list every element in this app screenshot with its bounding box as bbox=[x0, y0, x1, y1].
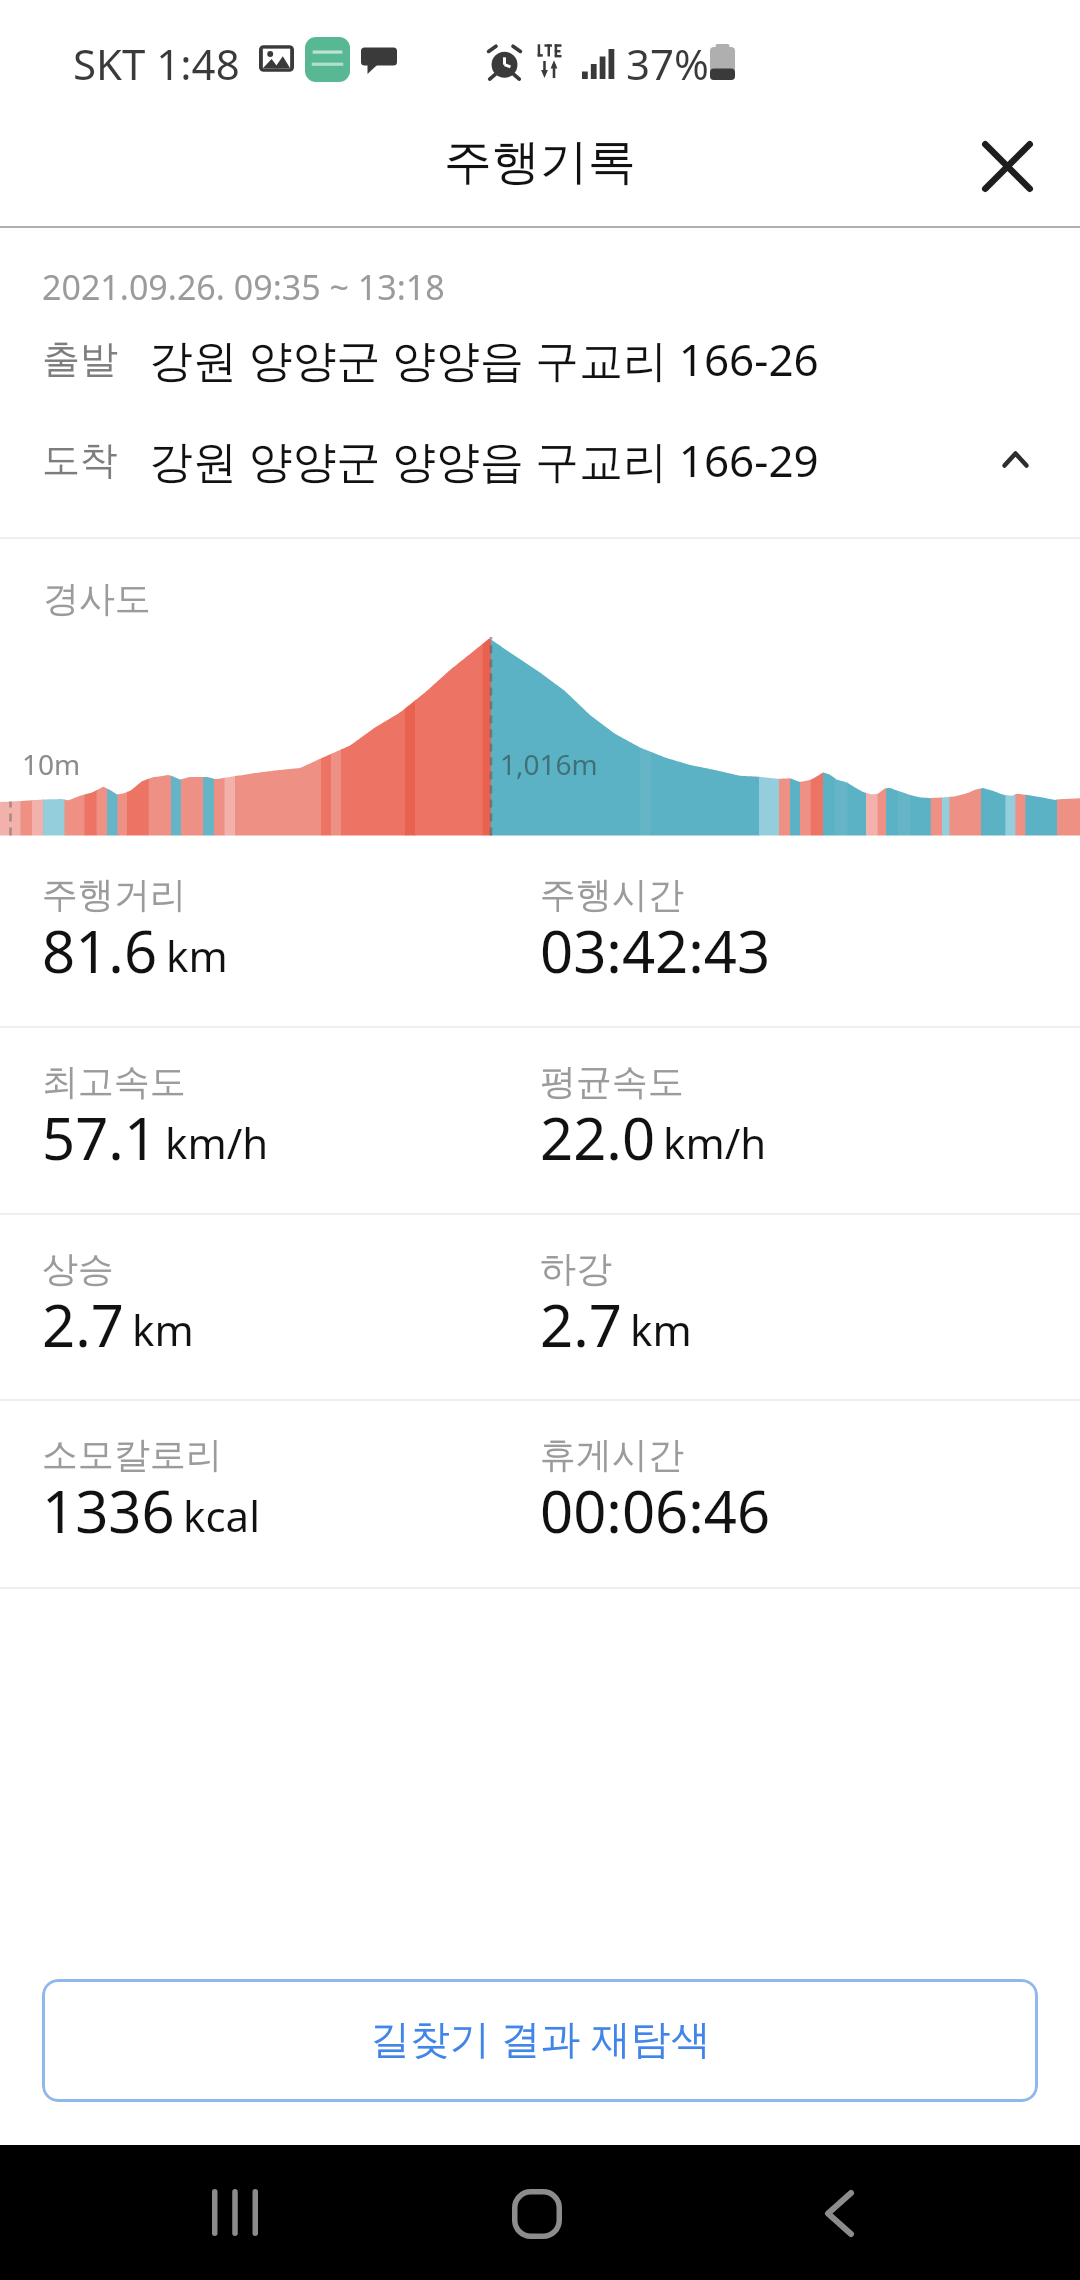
button[interactable]: 하강 bbox=[498, 1213, 1080, 1399]
button[interactable]: 최고속도 bbox=[0, 1026, 498, 1212]
staticText: 최고속도 bbox=[42, 1059, 186, 1104]
button[interactable]: 길찾기 결과 재탐색 bbox=[42, 1979, 1038, 2102]
staticText: 81.6 bbox=[42, 911, 158, 990]
staticText: 57.1 bbox=[42, 1098, 158, 1177]
button[interactable]: 주행시간 bbox=[498, 839, 1080, 1025]
staticText: 2021.09.26. 09:35 ~ 13:18 bbox=[42, 264, 445, 310]
button[interactable]: 상승 bbox=[0, 1213, 498, 1399]
button[interactable]: 소모칼로리 bbox=[0, 1399, 498, 1585]
staticText: km bbox=[630, 1301, 692, 1358]
staticText: 소모칼로리 bbox=[42, 1432, 222, 1477]
staticText: 휴게시간 bbox=[540, 1432, 684, 1477]
staticText: 1336 bbox=[42, 1471, 175, 1550]
staticText: 2.7 bbox=[540, 1285, 622, 1364]
staticText: 길찾기 결과 재탐색 bbox=[370, 2010, 711, 2065]
staticText: 10m bbox=[22, 745, 81, 783]
staticText: 22.0 bbox=[540, 1098, 656, 1177]
button[interactable]: 평균속도 bbox=[498, 1026, 1080, 1212]
button[interactable]: Close bbox=[952, 111, 1062, 221]
button[interactable]: 2021.09.26. 09:35 ~ 13:18 bbox=[0, 228, 1080, 538]
staticText: 주행기록 bbox=[444, 132, 636, 192]
staticText: 경사도 bbox=[43, 576, 151, 621]
button[interactable]: Home bbox=[477, 2154, 597, 2274]
staticText: 하강 bbox=[540, 1246, 612, 1291]
staticText: SKT 1:48 bbox=[73, 35, 240, 92]
staticText: 평균속도 bbox=[540, 1059, 684, 1104]
staticText: 00:06:46 bbox=[540, 1471, 771, 1550]
staticText: 강원 양양군 양양읍 구교리 166-29 bbox=[149, 430, 819, 490]
staticText: km/h bbox=[165, 1114, 269, 1171]
staticText: 2.7 bbox=[42, 1285, 124, 1364]
staticText: 강원 양양군 양양읍 구교리 166-26 bbox=[149, 329, 819, 389]
staticText: km/h bbox=[663, 1114, 767, 1171]
staticText: 도착 bbox=[42, 436, 118, 484]
staticText: km bbox=[132, 1301, 194, 1358]
staticText: kcal bbox=[183, 1487, 260, 1544]
staticText: 주행거리 bbox=[42, 872, 186, 917]
staticText: 03:42:43 bbox=[540, 911, 771, 990]
button[interactable]: Back bbox=[779, 2153, 899, 2273]
button[interactable]: 주행거리 bbox=[0, 839, 498, 1025]
staticText: 상승 bbox=[42, 1246, 114, 1291]
button[interactable]: 휴게시간 bbox=[498, 1399, 1080, 1585]
button[interactable]: Recent apps bbox=[175, 2152, 295, 2272]
staticText: 주행시간 bbox=[540, 872, 684, 917]
staticText: 1,016m bbox=[500, 745, 598, 783]
staticText: 출발 bbox=[42, 335, 118, 383]
staticText: km bbox=[166, 927, 228, 984]
staticText: 37% bbox=[626, 35, 709, 92]
